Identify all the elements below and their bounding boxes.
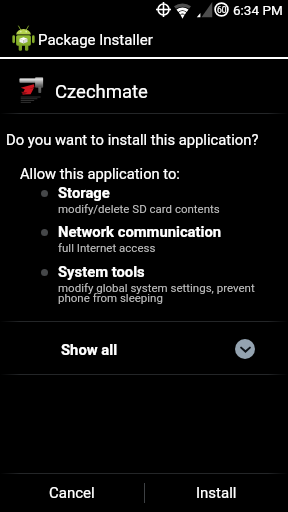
staticText: Package Installer	[38, 31, 153, 49]
staticText: System tools	[58, 263, 145, 280]
staticText: 60	[217, 5, 227, 15]
staticText: Do you want to install this application?	[6, 131, 259, 148]
button[interactable]: Cancel	[0, 474, 143, 512]
button[interactable]: Install	[144, 474, 288, 512]
staticText: 6:34 PM	[233, 2, 283, 18]
staticText: Allow this application to:	[20, 165, 180, 182]
button[interactable]: Show all	[0, 322, 288, 374]
staticText: Cancel	[49, 484, 95, 502]
staticText: Show all	[61, 341, 118, 358]
staticText: modify/delete SD card contents	[58, 202, 220, 215]
other: Show all permissions	[235, 339, 255, 359]
staticText: Network communication	[58, 223, 222, 240]
staticText: Storage	[58, 184, 110, 201]
staticText: Install	[196, 484, 237, 502]
staticText: modify global system settings, prevent p…	[58, 281, 255, 305]
staticText: Czechmate	[55, 81, 148, 103]
staticText: full Internet access	[58, 241, 156, 254]
